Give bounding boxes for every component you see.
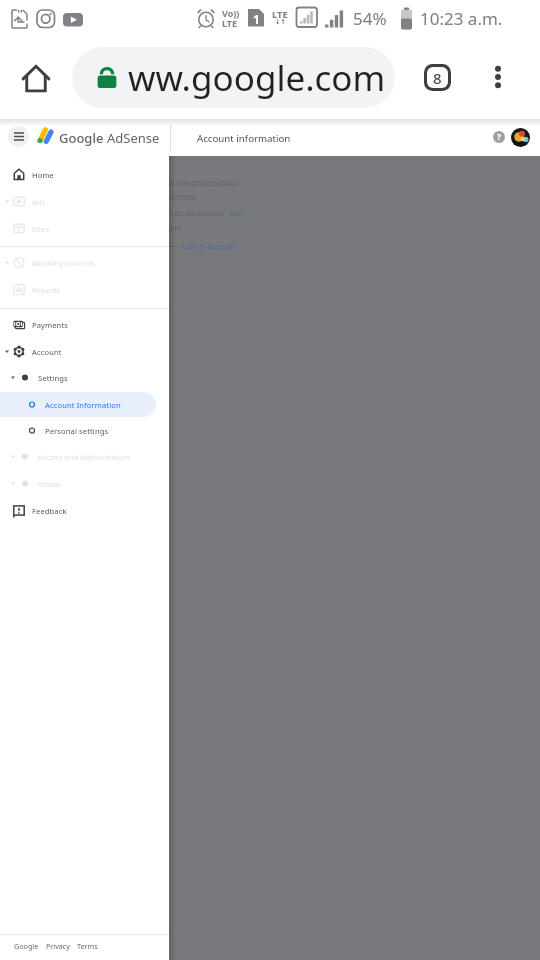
staticText: 1 — [253, 11, 260, 27]
staticText: Ads — [32, 197, 46, 207]
staticText: Account information — [197, 132, 291, 145]
button[interactable]: Account — [0, 339, 169, 364]
staticText: Google — [14, 941, 39, 951]
button[interactable]: Home — [12, 54, 60, 102]
staticText: Status — [38, 479, 61, 489]
button[interactable]: ww.google.com — [72, 47, 395, 108]
button[interactable]: Payments — [0, 312, 169, 337]
button[interactable]: Settings — [0, 365, 169, 390]
button[interactable]: Account — [508, 125, 532, 149]
button[interactable]: Home — [0, 162, 169, 187]
button[interactable]: Reports — [0, 277, 169, 302]
staticText: Account — [32, 347, 62, 357]
staticText: +05:30) Kolkata — [170, 208, 224, 218]
staticText: Cancel account — [182, 241, 236, 251]
staticText: Access and Authorisation — [38, 452, 131, 462]
staticText: Payments — [32, 320, 68, 330]
staticText: Blocking controls — [32, 258, 96, 268]
button[interactable]: Personal settings — [0, 418, 169, 443]
staticText: 475953 — [170, 192, 196, 202]
staticText: Sites — [32, 224, 50, 234]
button[interactable]: Blocking controls — [0, 250, 169, 275]
staticText: 10:23 a.m. — [420, 7, 503, 30]
staticText: ww.google.com — [128, 54, 386, 102]
button[interactable]: Open menu — [8, 126, 29, 147]
staticText: Account Information — [45, 400, 121, 410]
staticText: LTE — [222, 17, 238, 29]
button[interactable]: Tabs — [414, 54, 460, 100]
button[interactable]: Access and Authorisation — [0, 444, 169, 469]
staticText: Personal settings — [45, 426, 109, 436]
button[interactable]: Status — [0, 471, 169, 496]
staticText: Terms — [77, 941, 98, 951]
button[interactable]: More options — [475, 54, 521, 100]
button[interactable]: Feedback — [0, 498, 169, 523]
staticText: Feedback — [32, 506, 67, 516]
button[interactable]: Help — [487, 125, 510, 148]
staticText: Google — [59, 129, 104, 147]
staticText: Settings — [38, 373, 68, 383]
staticText: 8419625428543432 — [170, 178, 239, 188]
staticText: ↓↑ — [275, 18, 286, 26]
staticText: ent — [170, 223, 182, 233]
staticText: Home — [32, 170, 55, 180]
staticText: 8 — [433, 68, 442, 88]
button[interactable]: Account Information — [0, 392, 156, 417]
staticText: edit — [230, 208, 244, 218]
staticText: 54% — [353, 7, 387, 30]
staticText: Privacy — [46, 941, 70, 951]
button[interactable]: Sites — [0, 216, 169, 241]
staticText: ? — [497, 131, 502, 143]
staticText: AdSense — [107, 129, 160, 147]
staticText: Reports — [32, 285, 61, 295]
staticText: Vo)) — [222, 7, 240, 19]
staticText: LTE — [272, 8, 288, 21]
button[interactable]: Ads — [0, 189, 169, 214]
